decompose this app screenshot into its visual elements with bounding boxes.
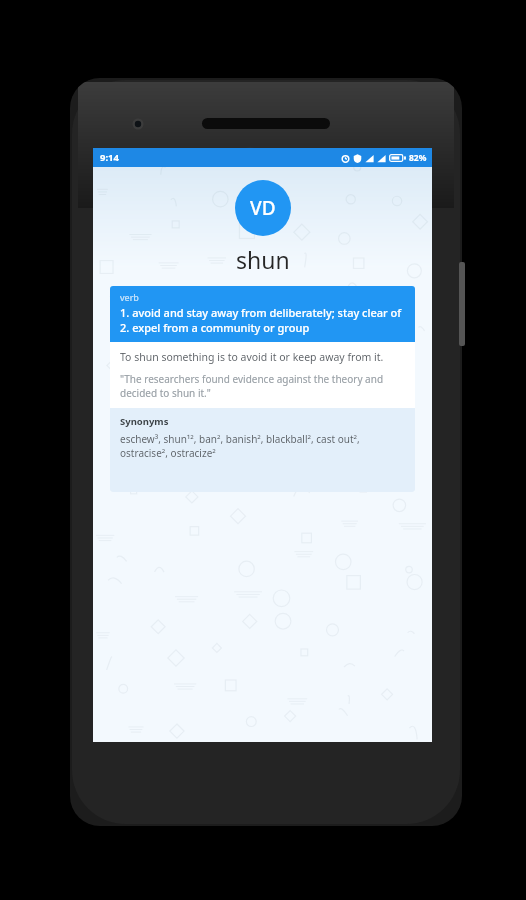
staticText: shun (236, 244, 290, 275)
staticText: To shun something is to avoid it or keep… (120, 350, 384, 364)
staticText: 1. avoid and stay away from deliberately… (120, 305, 402, 320)
staticText: 9:14 (100, 151, 119, 164)
staticText: VD (250, 195, 276, 221)
staticText: eschew³, shun¹², ban², banish², blackbal… (120, 432, 405, 460)
staticText: 82% (409, 152, 427, 164)
staticText: verb (120, 291, 139, 303)
staticText: "The researchers found evidence against … (120, 372, 405, 400)
button[interactable]: verb (110, 286, 415, 492)
button[interactable]: Vocabulary dictionary logo (235, 180, 291, 236)
staticText: Synonyms (120, 415, 169, 428)
staticText: 2. expel from a community or group (120, 320, 310, 335)
